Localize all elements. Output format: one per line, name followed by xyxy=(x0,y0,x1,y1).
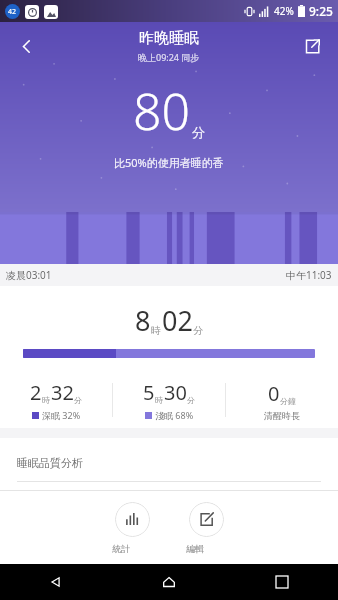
staticText: 分 xyxy=(193,324,203,337)
staticText: 5 xyxy=(143,379,155,406)
staticText: 80 xyxy=(133,77,191,145)
button[interactable]: Back xyxy=(6,26,46,66)
staticText: 凌晨03:01 xyxy=(6,268,52,282)
staticText: 02 xyxy=(162,302,193,339)
button[interactable]: Back xyxy=(0,564,112,600)
button[interactable]: 0 xyxy=(226,380,338,421)
staticText: 時 xyxy=(155,395,163,405)
button[interactable]: Share xyxy=(292,26,332,66)
staticText: 時 xyxy=(42,395,50,405)
staticText: 9:25 xyxy=(309,3,333,19)
staticText: 分 xyxy=(74,395,82,405)
staticText: 睡眠品質分析 xyxy=(17,456,83,470)
staticText: 中午11:03 xyxy=(286,268,332,282)
staticText: 深眠 32% xyxy=(42,409,81,421)
staticText: 2 xyxy=(30,379,42,406)
staticText: 昨晚睡眠 xyxy=(139,29,199,48)
staticText: 晚上09:24 同步 xyxy=(138,51,200,63)
button[interactable]: Recent apps xyxy=(225,564,338,600)
staticText: 清醒時長 xyxy=(264,410,300,421)
button[interactable]: 統計 xyxy=(112,502,152,554)
button[interactable]: Home xyxy=(112,564,225,600)
staticText: 淺眠 68% xyxy=(155,409,194,421)
staticText: 分 xyxy=(192,124,205,140)
staticText: 統計 xyxy=(112,543,152,554)
button[interactable]: 2 xyxy=(0,379,112,421)
staticText: 比50%的使用者睡的香 xyxy=(114,155,224,170)
staticText: 32 xyxy=(51,379,74,406)
staticText: 30 xyxy=(164,379,187,406)
staticText: 0 xyxy=(268,380,280,407)
staticText: 分鐘 xyxy=(280,396,296,406)
staticText: 編輯 xyxy=(186,543,226,554)
button[interactable]: 5 xyxy=(113,379,225,421)
staticText: 8 xyxy=(135,302,151,339)
staticText: 分 xyxy=(187,395,195,405)
staticText: 時 xyxy=(151,324,161,337)
button[interactable]: 編輯 xyxy=(186,502,226,554)
button[interactable]: 睡眠品質分析 xyxy=(0,438,338,482)
staticText: 42% xyxy=(274,4,294,18)
staticText: 42 xyxy=(8,7,17,17)
